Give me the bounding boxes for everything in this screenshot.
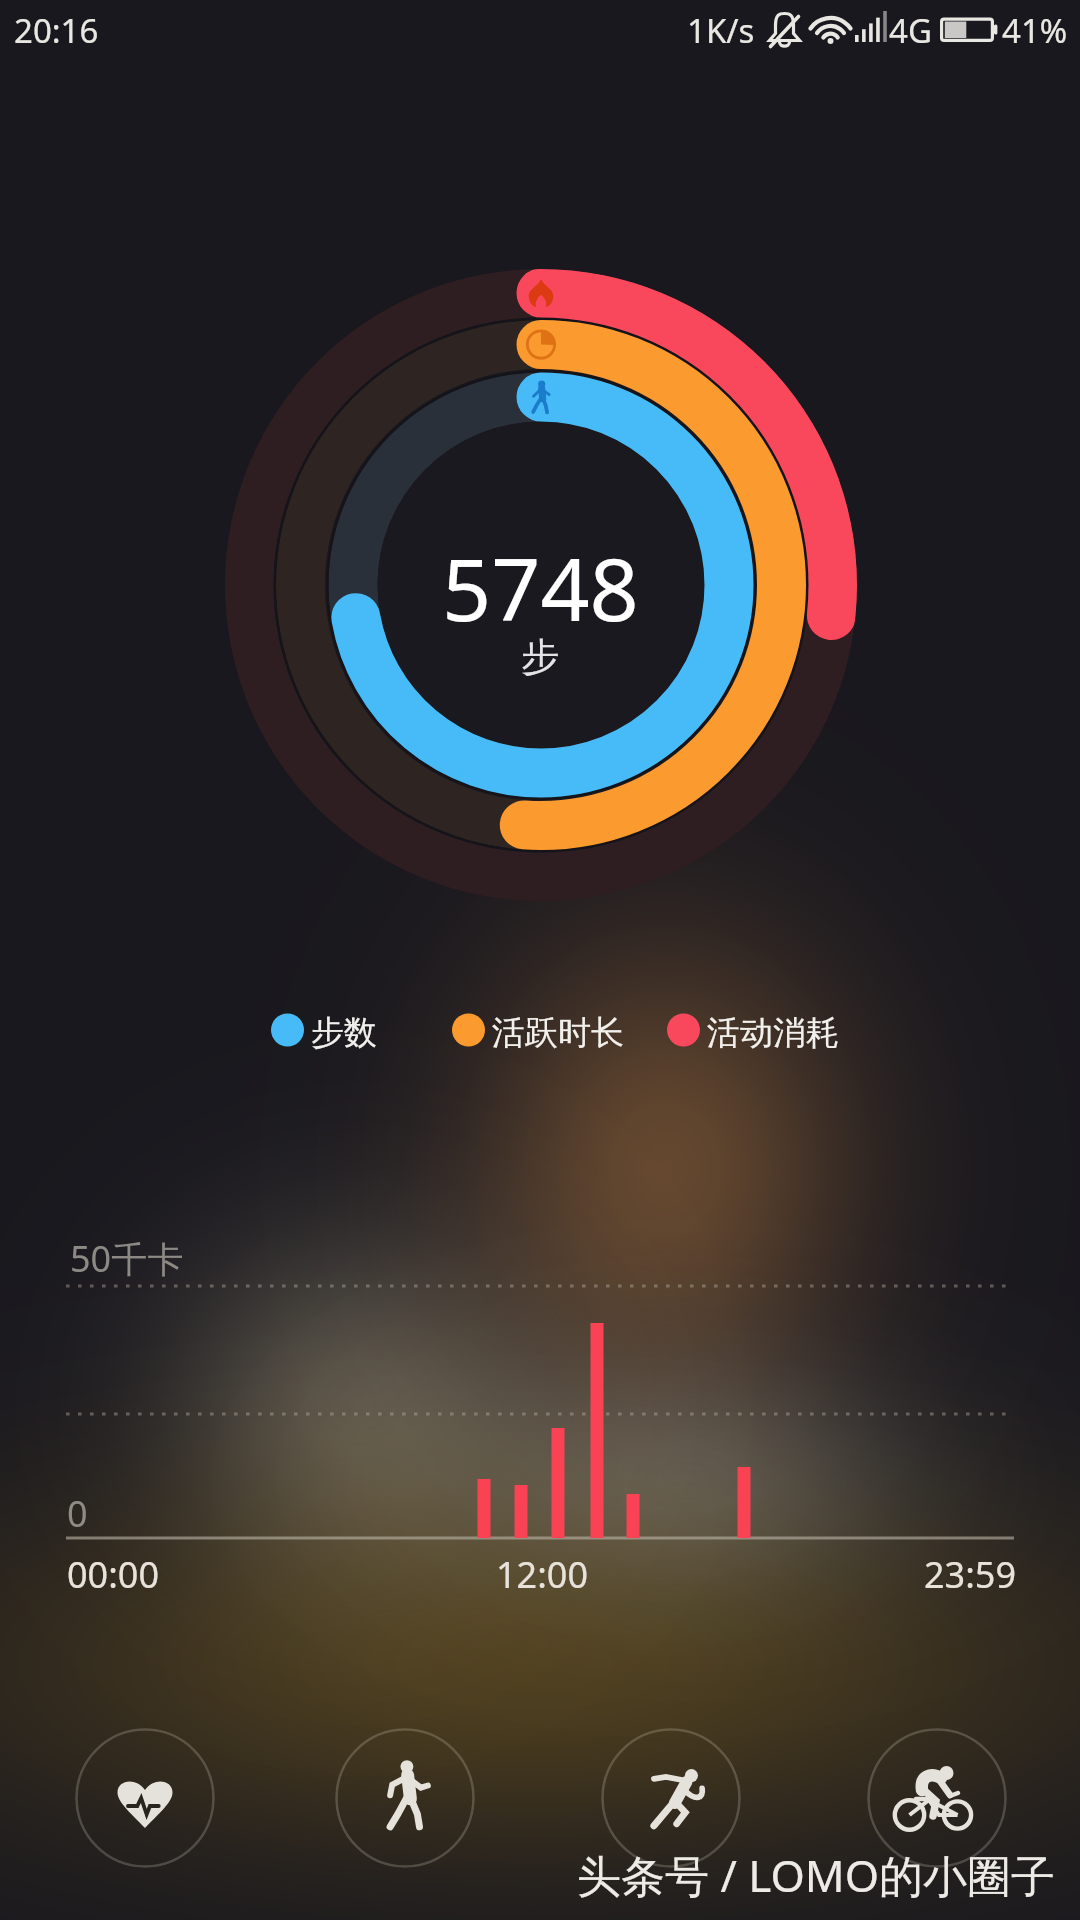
- staticText: 20:16: [14, 8, 99, 53]
- button[interactable]: 活动消耗: [659, 1006, 855, 1054]
- staticText: 00:00: [67, 1550, 160, 1599]
- button[interactable]: 活跃时长: [444, 1006, 640, 1054]
- staticText: 0: [67, 1489, 88, 1538]
- staticText: 步: [521, 633, 559, 681]
- staticText: 41%: [1002, 8, 1068, 53]
- button[interactable]: Cycling: [867, 1728, 1007, 1868]
- staticText: 头条号 / LOMO的小圈子: [577, 1845, 1056, 1905]
- staticText: 活跃时长: [492, 1012, 624, 1054]
- button[interactable]: Heart rate: [75, 1728, 215, 1868]
- button[interactable]: Daily activity rings, 5748 steps: [225, 269, 857, 901]
- button[interactable]: 步数: [263, 1006, 393, 1054]
- staticText: 12:00: [496, 1550, 589, 1599]
- staticText: 活动消耗: [707, 1012, 839, 1054]
- staticText: 23:59: [924, 1550, 1017, 1599]
- button[interactable]: Walking: [335, 1728, 475, 1868]
- staticText: 5748: [442, 529, 639, 646]
- staticText: 4G: [889, 8, 932, 53]
- staticText: 1K/s: [687, 8, 755, 53]
- button[interactable]: Running: [601, 1728, 741, 1868]
- staticText: 步数: [311, 1012, 377, 1054]
- staticText: 50千卡: [70, 1234, 184, 1283]
